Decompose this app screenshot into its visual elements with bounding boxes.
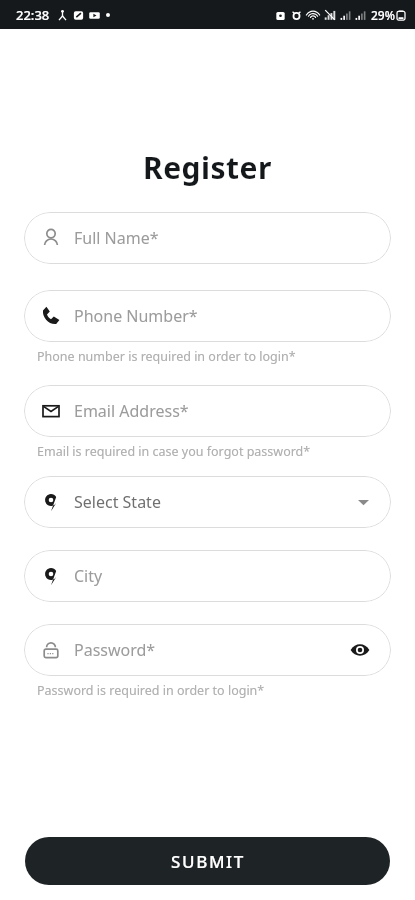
- staticText: Phone Number*: [74, 305, 373, 327]
- staticText: Phone number is required in order to log…: [37, 348, 296, 365]
- button[interactable]: Phone Number*: [24, 290, 391, 342]
- staticText: Email Address*: [74, 400, 373, 422]
- staticText: Password is required in order to login*: [37, 682, 265, 699]
- button[interactable]: Open state list: [353, 492, 373, 512]
- button[interactable]: Show password: [347, 637, 373, 663]
- staticText: 29%: [371, 7, 395, 23]
- button[interactable]: Password*: [24, 624, 391, 676]
- staticText: City: [74, 565, 373, 587]
- button[interactable]: SUBMIT: [25, 837, 390, 885]
- staticText: Email is required in case you forgot pas…: [37, 443, 311, 460]
- button[interactable]: Email Address*: [24, 385, 391, 437]
- staticText: Full Name*: [74, 227, 373, 249]
- staticText: Password*: [74, 639, 347, 661]
- staticText: Select State: [74, 491, 353, 513]
- button[interactable]: Full Name*: [24, 212, 391, 264]
- button[interactable]: Select State: [24, 476, 391, 528]
- staticText: 22:38: [16, 6, 50, 24]
- staticText: SUBMIT: [171, 850, 245, 873]
- staticText: Register: [143, 147, 272, 188]
- button[interactable]: City: [24, 550, 391, 602]
